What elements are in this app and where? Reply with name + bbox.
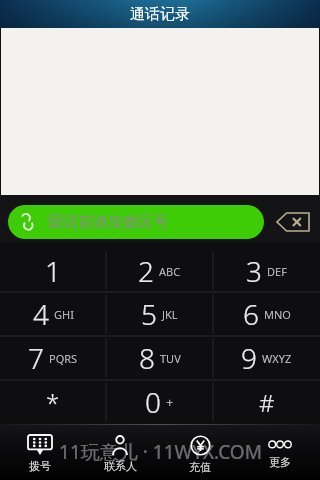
button[interactable]: 充值 (160, 424, 240, 480)
staticText: GHI (54, 307, 74, 322)
staticText: # (259, 386, 275, 419)
button[interactable]: 6 (213, 292, 320, 336)
staticText: PQRS (49, 351, 78, 366)
button[interactable]: 3 (213, 249, 320, 292)
staticText: 9 (241, 339, 257, 377)
staticText: 2 (138, 252, 154, 290)
staticText: 1 (45, 252, 61, 290)
staticText: + (166, 393, 174, 411)
staticText: 固话前请加拨区号 (48, 213, 168, 232)
button[interactable]: 7 (0, 336, 106, 380)
button[interactable]: 更多 (240, 424, 320, 480)
staticText: 联系人 (104, 459, 137, 473)
staticText: 11玩意儿 · 11WYX.COM (59, 439, 262, 465)
button[interactable]: 固话前请加拨区号 (8, 205, 264, 239)
staticText: 3 (246, 252, 262, 290)
staticText: 4 (33, 295, 49, 333)
button[interactable]: Backspace (274, 205, 312, 239)
button[interactable]: 拨号 (0, 424, 80, 480)
button[interactable]: 8 (106, 336, 213, 380)
staticText: DEF (267, 264, 287, 279)
staticText: 更多 (269, 455, 291, 469)
button[interactable]: 9 (213, 336, 320, 380)
staticText: WXYZ (262, 351, 292, 366)
button[interactable]: 5 (106, 292, 213, 336)
staticText: 5 (141, 295, 157, 333)
staticText: 0 (145, 383, 161, 421)
staticText: 7 (28, 339, 44, 377)
button[interactable]: 0 (106, 380, 213, 424)
staticText: * (46, 386, 60, 419)
button[interactable]: 4 (0, 292, 106, 336)
button[interactable]: * (0, 380, 106, 424)
staticText: JKL (162, 307, 178, 322)
staticText: 拨号 (29, 459, 51, 473)
button[interactable]: 2 (106, 249, 213, 292)
staticText: MNO (264, 307, 291, 322)
staticText: TUV (160, 351, 181, 366)
button[interactable]: # (213, 380, 320, 424)
staticText: 通话记录 (130, 5, 190, 24)
button[interactable]: 联系人 (80, 424, 160, 480)
button[interactable]: 1 (0, 249, 106, 292)
staticText: 8 (139, 339, 155, 377)
staticText: 6 (243, 295, 259, 333)
staticText: 充值 (189, 460, 211, 474)
staticText: ABC (159, 264, 181, 279)
